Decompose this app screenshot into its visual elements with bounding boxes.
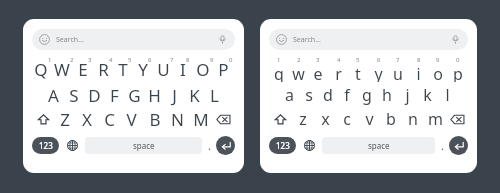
- button[interactable]: Backspace: [446, 107, 468, 131]
- button[interactable]: U: [155, 56, 175, 83]
- staticText: D: [88, 84, 101, 107]
- button[interactable]: Q: [32, 56, 53, 83]
- staticText: r: [335, 63, 342, 82]
- button[interactable]: G: [124, 83, 144, 107]
- button[interactable]: Change language: [301, 137, 318, 154]
- button[interactable]: space: [322, 137, 435, 154]
- button[interactable]: Emoji: [32, 29, 235, 50]
- button[interactable]: J: [164, 83, 184, 107]
- button[interactable]: 9: [428, 56, 448, 83]
- button[interactable]: space: [85, 137, 202, 154]
- button[interactable]: Emoji: [269, 29, 468, 50]
- button[interactable]: 3: [308, 56, 328, 83]
- button[interactable]: b: [380, 107, 402, 131]
- button[interactable]: 8: [408, 56, 428, 83]
- staticText: c: [343, 108, 351, 130]
- button[interactable]: c: [336, 107, 358, 131]
- button[interactable]: Shift: [269, 107, 292, 131]
- button[interactable]: S: [64, 83, 84, 107]
- button[interactable]: f: [337, 83, 357, 107]
- button[interactable]: s: [299, 83, 318, 107]
- button[interactable]: R: [95, 56, 115, 83]
- staticText: b: [386, 108, 396, 130]
- button[interactable]: F: [104, 83, 124, 107]
- staticText: Z: [60, 108, 70, 131]
- button[interactable]: I: [175, 56, 195, 83]
- button[interactable]: Shift: [32, 107, 54, 131]
- button[interactable]: v: [358, 107, 380, 131]
- button[interactable]: N: [166, 107, 189, 131]
- staticText: d: [323, 84, 333, 106]
- staticText: B: [149, 108, 161, 131]
- button[interactable]: 5: [348, 56, 368, 83]
- button[interactable]: z: [292, 107, 314, 131]
- button[interactable]: Enter: [216, 136, 235, 155]
- button[interactable]: K: [184, 83, 204, 107]
- button[interactable]: Backspace: [212, 107, 235, 131]
- staticText: 123: [276, 140, 290, 151]
- button[interactable]: P: [215, 56, 235, 83]
- staticText: t: [355, 63, 361, 82]
- staticText: p: [453, 63, 463, 82]
- staticText: 9: [436, 56, 440, 64]
- button[interactable]: L: [204, 83, 224, 107]
- staticText: 2: [297, 56, 301, 64]
- button[interactable]: 4: [328, 56, 348, 83]
- staticText: 7: [396, 56, 400, 64]
- button[interactable]: H: [144, 83, 164, 107]
- staticText: 8: [186, 56, 190, 64]
- button[interactable]: Z: [54, 107, 76, 131]
- other: Voice input: [217, 34, 228, 45]
- button[interactable]: T: [115, 56, 135, 83]
- staticText: 3: [88, 56, 92, 64]
- button[interactable]: 2: [288, 56, 308, 83]
- button[interactable]: d: [318, 83, 337, 107]
- button[interactable]: 6: [368, 56, 388, 83]
- button[interactable]: h: [377, 83, 397, 107]
- button[interactable]: Enter: [449, 136, 468, 155]
- button[interactable]: l: [437, 83, 457, 107]
- button[interactable]: O: [195, 56, 215, 83]
- button[interactable]: 7: [388, 56, 408, 83]
- button[interactable]: B: [143, 107, 166, 131]
- staticText: U: [157, 58, 170, 81]
- button[interactable]: n: [402, 107, 424, 131]
- staticText: 6: [148, 56, 152, 64]
- button[interactable]: .: [435, 134, 449, 156]
- button[interactable]: M: [189, 107, 212, 131]
- button[interactable]: E: [74, 56, 95, 83]
- staticText: I: [180, 58, 186, 81]
- button[interactable]: 0: [448, 56, 468, 83]
- button[interactable]: 1: [269, 56, 288, 83]
- staticText: Y: [138, 58, 148, 81]
- button[interactable]: Change language: [64, 137, 81, 154]
- staticText: u: [393, 63, 403, 82]
- button[interactable]: k: [417, 83, 437, 107]
- button[interactable]: 123: [269, 137, 296, 154]
- staticText: 0: [456, 56, 460, 64]
- button[interactable]: j: [397, 83, 417, 107]
- staticText: m: [428, 108, 443, 130]
- button[interactable]: C: [98, 107, 120, 131]
- staticText: space: [133, 140, 155, 151]
- staticText: L: [210, 84, 219, 107]
- staticText: 1: [277, 56, 281, 64]
- staticText: V: [126, 108, 137, 131]
- button[interactable]: .: [202, 134, 216, 156]
- button[interactable]: 123: [32, 137, 59, 154]
- staticText: i: [416, 63, 421, 82]
- button[interactable]: m: [424, 107, 446, 131]
- button[interactable]: W: [53, 56, 74, 83]
- staticText: A: [48, 84, 59, 107]
- button[interactable]: D: [84, 83, 104, 107]
- button[interactable]: V: [120, 107, 143, 131]
- button[interactable]: A: [43, 83, 64, 107]
- staticText: G: [128, 84, 141, 107]
- staticText: a: [285, 84, 294, 106]
- button[interactable]: a: [280, 83, 299, 107]
- button[interactable]: g: [357, 83, 377, 107]
- button[interactable]: X: [76, 107, 98, 131]
- button[interactable]: x: [314, 107, 336, 131]
- staticText: g: [362, 84, 372, 106]
- button[interactable]: Y: [135, 56, 155, 83]
